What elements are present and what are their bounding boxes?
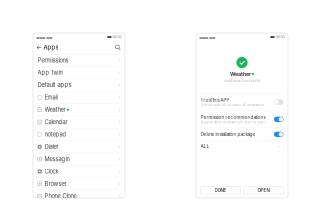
staticText: Email [44, 94, 57, 101]
staticText: notepad [44, 131, 66, 138]
staticText: Browser [44, 180, 66, 187]
staticText: Weather [44, 106, 65, 113]
button[interactable]: Back [37, 42, 42, 53]
button[interactable]: OPEN [243, 187, 284, 194]
staticText: Give this app full access to all permiss… [200, 103, 263, 107]
button[interactable]: Trust this APP [196, 93, 288, 111]
staticText: Suggest which permissions to grant to ap… [200, 121, 264, 124]
button[interactable]: Weather [33, 104, 125, 116]
staticText: Permissions [37, 57, 68, 64]
staticText: ✓ [238, 58, 245, 68]
button[interactable]: Search [115, 42, 121, 53]
button[interactable]: notepad [33, 128, 125, 141]
staticText: ▄▄▄ ▄▄ [36, 35, 52, 39]
staticText: 08:30 [111, 35, 121, 39]
staticText: Permission recommendations [200, 115, 265, 120]
button[interactable]: Dialer [33, 141, 125, 153]
staticText: Apps [43, 44, 58, 51]
button[interactable]: Clock [33, 165, 125, 178]
staticText: DONE [215, 188, 227, 193]
button[interactable]: Email [33, 91, 125, 104]
button[interactable]: Permission recommendations [196, 111, 288, 128]
button[interactable]: Delete installation package [196, 128, 288, 141]
button[interactable]: App twin [33, 67, 125, 79]
staticText: ALL [200, 143, 209, 149]
staticText: Clock [44, 168, 58, 175]
staticText: Delete installation package [200, 132, 255, 137]
staticText: Default apps [37, 81, 71, 88]
button[interactable]: DONE [200, 187, 241, 194]
staticText: ▪ ▪ [278, 144, 283, 148]
button[interactable]: Calendar [33, 116, 125, 128]
staticText: 08:30 [274, 35, 284, 39]
staticText: App twin [37, 69, 62, 76]
staticText: Phone Clone [44, 193, 76, 200]
button[interactable]: Default apps [33, 79, 125, 91]
button[interactable]: Permissions [33, 54, 125, 67]
button[interactable]: Browser [33, 178, 125, 190]
staticText: Calendar [44, 119, 67, 125]
staticText: ▄▄▄ ▄▄ [199, 35, 215, 39]
staticText: Trust this APP [200, 97, 229, 103]
staticText: Weather [230, 71, 251, 77]
staticText: Messagin [44, 156, 69, 162]
button[interactable]: Messagin [33, 153, 125, 165]
button[interactable]: Phone Clone [33, 190, 125, 202]
staticText: OPEN [257, 188, 269, 193]
staticText: Installation successful [223, 79, 260, 83]
staticText: Dialer [44, 143, 58, 150]
